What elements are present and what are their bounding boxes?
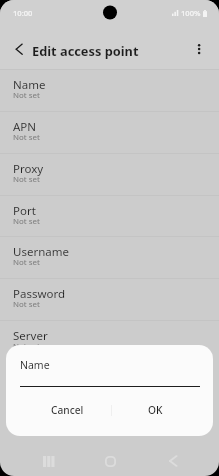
button[interactable]: Password	[0, 278, 219, 320]
staticText: Not set	[13, 90, 40, 101]
button[interactable]: Server	[0, 320, 219, 362]
button[interactable]: Navigate up	[4, 33, 36, 65]
staticText: Edit access point	[32, 42, 139, 59]
button[interactable]: OK	[112, 397, 199, 423]
button[interactable]: More options	[183, 33, 215, 65]
staticText: Port	[13, 203, 36, 219]
staticText: Name	[20, 358, 50, 372]
button[interactable]: Proxy	[0, 153, 219, 195]
staticText: Not set	[13, 257, 40, 268]
staticText: Cancel	[51, 403, 84, 417]
staticText: Password	[13, 286, 66, 302]
staticText: Not set	[13, 132, 40, 143]
staticText: 10:00	[13, 8, 33, 18]
staticText: Proxy	[13, 161, 44, 177]
button[interactable]: Name	[0, 69, 219, 111]
staticText: Not set	[13, 174, 40, 185]
staticText: Server	[13, 328, 48, 344]
staticText: OK	[148, 403, 163, 417]
button[interactable]: APN	[0, 111, 219, 153]
staticText: Name	[13, 77, 46, 93]
staticText: Username	[13, 244, 69, 260]
staticText: Not set	[13, 216, 40, 227]
button[interactable]: Username	[0, 236, 219, 278]
button[interactable]: Cancel	[24, 397, 111, 423]
button[interactable]: Port	[0, 195, 219, 237]
staticText: Not set	[13, 299, 40, 310]
staticText: Not set	[13, 341, 40, 352]
staticText: 100%	[181, 8, 201, 18]
button[interactable]: Recent apps	[29, 440, 69, 472]
staticText: APN	[13, 119, 37, 135]
